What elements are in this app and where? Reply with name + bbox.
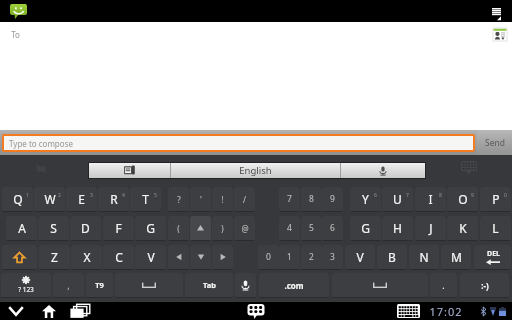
staticText: O	[458, 191, 468, 207]
button[interactable]: P	[480, 187, 511, 211]
button[interactable]: Show keyboard	[242, 302, 270, 320]
button[interactable]: E	[66, 187, 97, 211]
button[interactable]: 6	[322, 216, 343, 240]
button[interactable]: Shift	[2, 245, 37, 269]
button[interactable]: B	[377, 245, 407, 269]
staticText: Send	[485, 137, 505, 149]
staticText: V	[147, 249, 155, 265]
button[interactable]: Q	[2, 187, 33, 211]
button[interactable]: 3	[322, 245, 343, 269]
button[interactable]: Type to compose	[4, 136, 473, 150]
button[interactable]: Left	[168, 245, 189, 269]
button[interactable]: Recent apps	[66, 302, 94, 320]
button[interactable]: Pick contact	[488, 23, 511, 45]
button[interactable]: 2	[301, 245, 322, 269]
button[interactable]: Z	[39, 245, 70, 269]
button[interactable]: !	[212, 187, 233, 211]
staticText: Y	[362, 191, 369, 207]
button[interactable]: Tab	[185, 273, 233, 297]
staticText: U	[393, 191, 402, 207]
staticText: J	[429, 220, 433, 236]
button[interactable]: H	[382, 216, 413, 240]
button[interactable]: J	[415, 216, 446, 240]
button[interactable]: Home	[35, 302, 63, 320]
staticText: )	[221, 223, 224, 234]
button[interactable]: G	[135, 216, 166, 240]
staticText: @	[241, 223, 249, 234]
button[interactable]: /	[234, 187, 255, 211]
staticText: F	[115, 220, 122, 236]
button[interactable]: T	[130, 187, 161, 211]
button[interactable]: Back	[2, 302, 30, 320]
button[interactable]: W	[34, 187, 65, 211]
button[interactable]: Up	[190, 216, 211, 240]
button[interactable]: L	[480, 216, 511, 240]
button[interactable]: .com	[259, 273, 329, 297]
button[interactable]: @	[234, 216, 255, 240]
staticText: V	[356, 249, 364, 265]
button[interactable]: R	[98, 187, 129, 211]
button[interactable]: U	[382, 187, 413, 211]
button[interactable]: 7	[279, 187, 300, 211]
button[interactable]: T9	[86, 273, 113, 297]
staticText: Q	[13, 191, 23, 207]
button[interactable]: ?	[168, 187, 189, 211]
button[interactable]: C	[103, 245, 134, 269]
button[interactable]: Space	[332, 273, 428, 297]
button[interactable]: Messaging	[10, 4, 27, 19]
button[interactable]: Input options	[31, 158, 51, 178]
staticText: 3	[330, 251, 335, 263]
button[interactable]: .	[430, 273, 457, 297]
button[interactable]: :-)	[460, 273, 509, 297]
button[interactable]: Down	[190, 245, 211, 269]
button[interactable]: A	[6, 216, 37, 240]
staticText: S	[50, 220, 57, 236]
button[interactable]: 1	[279, 245, 300, 269]
button[interactable]: F	[103, 216, 134, 240]
button[interactable]: Y	[350, 187, 381, 211]
button[interactable]: Voice input	[235, 273, 256, 297]
button[interactable]: N	[409, 245, 439, 269]
staticText: 2	[58, 192, 61, 199]
staticText: M	[451, 249, 462, 265]
button[interactable]: 4	[279, 216, 300, 240]
button[interactable]: 5	[301, 216, 322, 240]
button[interactable]: 0	[258, 245, 279, 269]
button[interactable]: X	[71, 245, 102, 269]
button[interactable]: Send	[477, 130, 512, 155]
button[interactable]: I	[415, 187, 446, 211]
button[interactable]: D	[70, 216, 101, 240]
button[interactable]: Space	[115, 273, 183, 297]
staticText: /	[243, 194, 246, 205]
staticText: !	[221, 194, 224, 205]
button[interactable]: Input method	[394, 302, 423, 320]
staticText: .	[442, 279, 445, 291]
button[interactable]: Symbols	[1, 273, 51, 297]
button[interactable]: 9	[322, 187, 343, 211]
staticText: K	[459, 220, 467, 236]
button[interactable]: O	[447, 187, 478, 211]
button[interactable]: V	[135, 245, 166, 269]
button[interactable]: G	[350, 216, 381, 240]
staticText: 6	[330, 222, 335, 234]
button[interactable]: M	[441, 245, 471, 269]
button[interactable]: )	[212, 216, 233, 240]
button[interactable]: (	[168, 216, 189, 240]
button[interactable]: S	[38, 216, 69, 240]
button[interactable]: V	[345, 245, 375, 269]
button[interactable]	[341, 163, 425, 178]
staticText: :-)	[481, 280, 489, 291]
button[interactable]: ,	[53, 273, 84, 297]
staticText: ,	[67, 279, 70, 291]
staticText: R	[110, 191, 118, 207]
button[interactable]: English	[171, 163, 340, 178]
button[interactable]: 8	[301, 187, 322, 211]
button[interactable]: Delete	[474, 245, 511, 269]
button[interactable]: Right	[212, 245, 233, 269]
button[interactable]: Hide keyboard	[458, 157, 479, 178]
button[interactable]: K	[447, 216, 478, 240]
button[interactable]: More options	[485, 0, 512, 22]
button[interactable]	[89, 163, 170, 178]
staticText: A	[18, 220, 26, 236]
button[interactable]: '	[190, 187, 211, 211]
